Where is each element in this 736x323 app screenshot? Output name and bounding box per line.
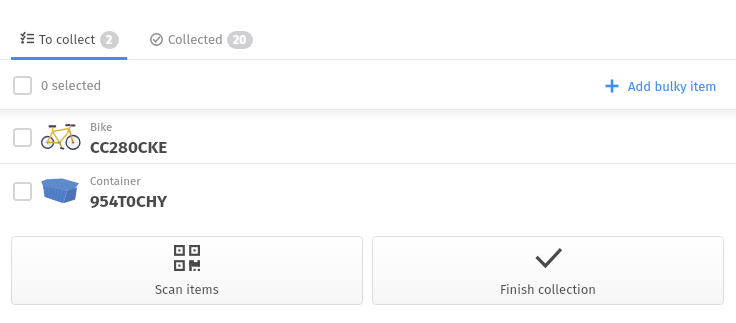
button[interactable]: Select — [13, 76, 32, 95]
staticText: 2 — [106, 33, 113, 47]
button[interactable]: Select — [0, 110, 736, 163]
button[interactable]: Select — [0, 164, 736, 217]
button[interactable]: Collected — [129, 0, 271, 60]
staticText: Collected — [168, 32, 223, 48]
button[interactable]: Select — [13, 60, 736, 110]
staticText: 954T0CHY — [90, 191, 168, 211]
staticText: Scan items — [155, 282, 219, 298]
button[interactable]: Select — [13, 128, 32, 147]
button[interactable]: Finish collection — [372, 236, 724, 305]
staticText: Add bulky item — [628, 79, 717, 95]
button[interactable]: Select — [13, 182, 32, 201]
staticText: To collect — [39, 32, 96, 48]
button[interactable]: Add bulky item — [605, 77, 717, 93]
staticText: 20 — [233, 33, 247, 47]
button[interactable]: Scan items — [11, 236, 363, 305]
staticText: 0 selected — [41, 78, 102, 94]
staticText: Finish collection — [500, 282, 596, 298]
staticText: Bike — [90, 120, 113, 134]
button[interactable]: To collect — [0, 0, 129, 60]
staticText: CC280CKE — [90, 137, 168, 157]
staticText: Container — [90, 174, 141, 188]
